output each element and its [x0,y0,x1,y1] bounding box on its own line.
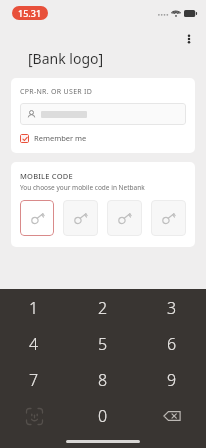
button[interactable]: 7 [0,362,68,398]
button[interactable]: Mobile code digit ${active} [107,200,142,236]
staticText: 3 [167,297,177,319]
staticText: 4 [29,333,39,355]
staticText: 15.31 [18,7,42,19]
button[interactable]: Mobile code digit ${active} [151,200,186,236]
staticText: 2 [98,297,108,319]
staticText: CPR-NR. OR USER ID [20,87,93,97]
button[interactable]: Backspace [137,398,206,434]
button[interactable]: 1 [0,289,68,326]
button[interactable]: 4 [0,326,68,362]
button[interactable]: 0 [68,398,137,434]
staticText: 9 [167,369,177,391]
staticText: 0 [98,405,108,427]
button[interactable]: 6 [137,326,206,362]
staticText: 6 [167,333,177,355]
staticText: 7 [29,369,39,391]
button[interactable]: 3 [137,289,206,326]
button[interactable]: More options [178,28,200,50]
button[interactable]: Face ID [0,398,68,434]
button[interactable] [20,103,186,125]
button[interactable]: Mobile code digit ${active} [20,200,54,236]
staticText: You choose your mobile code in Netbank [20,183,145,192]
staticText: MOBILE CODE [20,171,73,181]
button[interactable]: 9 [137,362,206,398]
button[interactable]: Mobile code digit ${active} [63,200,98,236]
button[interactable]: 8 [68,362,137,398]
staticText: 8 [98,369,108,391]
staticText: Remember me [34,133,87,143]
staticText: 1 [29,297,39,319]
staticText: 5 [98,333,108,355]
button[interactable]: 2 [68,289,137,326]
button[interactable]: Remember me [20,132,87,144]
button[interactable]: 5 [68,326,137,362]
staticText: [Bank logo] [28,49,104,68]
